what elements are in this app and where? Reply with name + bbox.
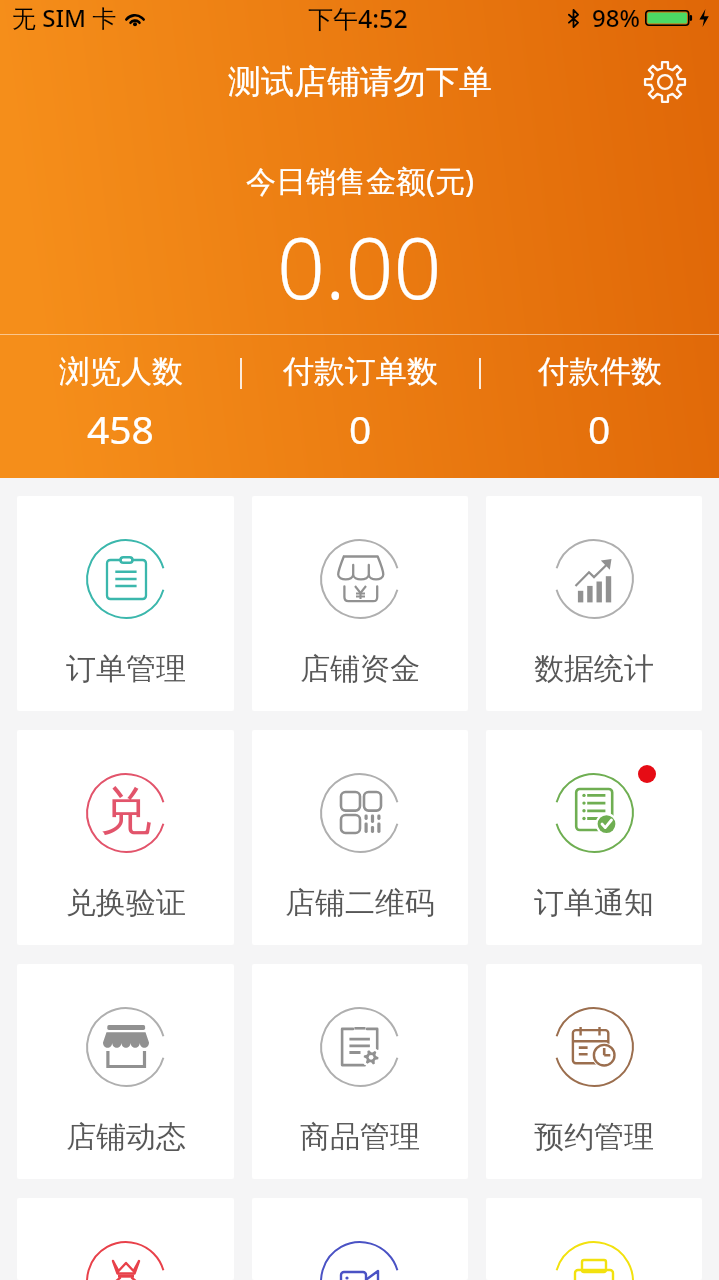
staticText: 订单通知 (534, 884, 654, 922)
button[interactable]: 浏览人数 (0, 340, 241, 460)
button[interactable]: 店铺资金 (252, 496, 468, 711)
staticText: 兑换验证 (66, 884, 186, 922)
staticText: 付款订单数 (283, 352, 438, 391)
staticText: 店铺二维码 (285, 884, 435, 922)
staticText: 0.00 (277, 209, 442, 323)
button[interactable]: 红包 (17, 1198, 234, 1280)
button[interactable]: 付款件数 (480, 340, 719, 460)
staticText: 98% (592, 1, 640, 34)
button[interactable]: 付款订单数 (241, 340, 480, 460)
staticText: 0 (588, 402, 611, 455)
button[interactable]: 商品管理 (252, 964, 468, 1179)
button[interactable]: 订单管理 (17, 496, 234, 711)
button[interactable]: 预约管理 (486, 964, 702, 1179)
staticText: 458 (87, 402, 154, 455)
button[interactable]: 视频 (252, 1198, 468, 1280)
button[interactable]: 数据统计 (486, 496, 702, 711)
staticText: 下午4:52 (308, 1, 408, 35)
staticText: 0 (349, 402, 372, 455)
staticText: 无 SIM 卡 (12, 1, 117, 34)
staticText: 兑 (100, 779, 152, 845)
staticText: 商品管理 (300, 1118, 420, 1156)
staticText: 预约管理 (534, 1118, 654, 1156)
staticText: 店铺资金 (300, 650, 420, 688)
staticText: 今日销售金额(元) (246, 160, 474, 201)
button[interactable]: Settings (637, 54, 693, 110)
button[interactable]: 兑 (17, 730, 234, 945)
staticText: 店铺动态 (66, 1118, 186, 1156)
staticText: 浏览人数 (59, 352, 183, 391)
button[interactable]: 店铺动态 (17, 964, 234, 1179)
button[interactable]: 打印 (486, 1198, 702, 1280)
staticText: 数据统计 (534, 650, 654, 688)
button[interactable]: 订单通知 (486, 730, 702, 945)
button[interactable]: 店铺二维码 (252, 730, 468, 945)
staticText: 测试店铺请勿下单 (228, 61, 492, 103)
staticText: 付款件数 (538, 352, 662, 391)
staticText: 订单管理 (66, 650, 186, 688)
